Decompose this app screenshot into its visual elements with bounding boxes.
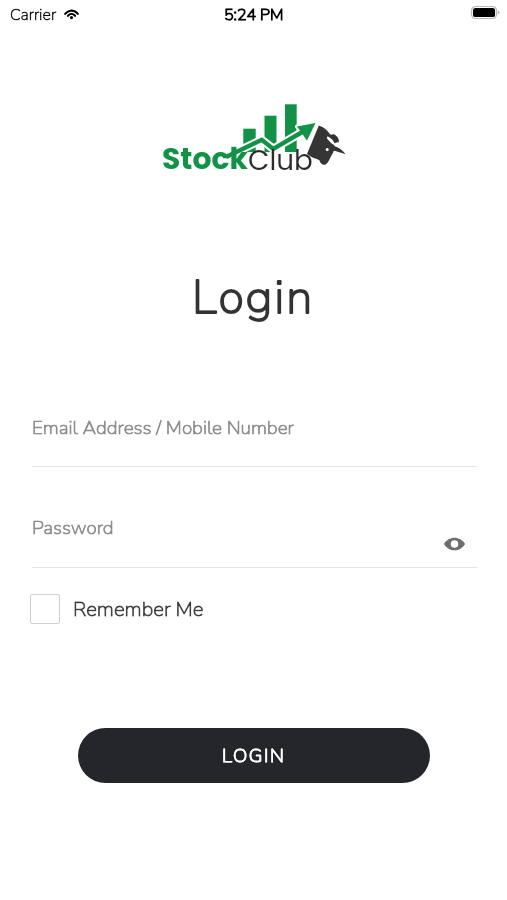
staticText: Login — [192, 265, 315, 329]
staticText: Remember Me — [73, 595, 204, 623]
staticText: Password — [32, 515, 114, 541]
button[interactable]: LOGIN — [78, 728, 430, 783]
staticText: LOGIN — [222, 743, 286, 769]
staticText: Remember Me — [73, 595, 204, 623]
staticText: Carrier — [10, 4, 57, 26]
staticText: 5:24 PM — [224, 4, 284, 26]
staticText: Email Address / Mobile Number — [32, 415, 294, 441]
staticText: LOGIN — [222, 743, 286, 769]
button[interactable]: Remember Me — [30, 593, 204, 624]
staticText: Carrier — [10, 4, 57, 26]
staticText: 5:24 PM — [224, 4, 284, 26]
staticText: Club — [248, 141, 313, 180]
staticText: Email Address / Mobile Number — [32, 415, 294, 441]
button[interactable]: Show password — [441, 533, 467, 555]
staticText: Login — [192, 265, 315, 329]
staticText: Password — [32, 515, 114, 541]
staticText: Stock — [162, 138, 248, 180]
